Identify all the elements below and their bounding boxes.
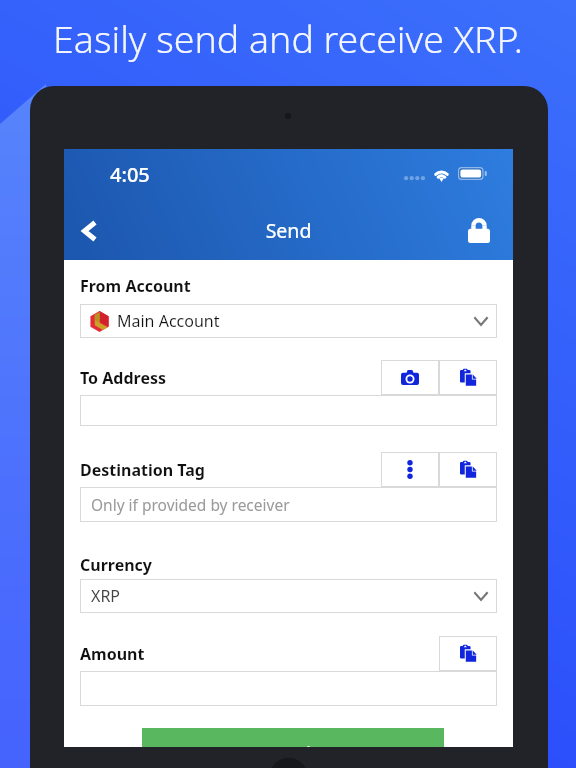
staticText: Amount <box>80 643 145 665</box>
button[interactable]: Paste <box>439 636 497 671</box>
button[interactable]: More options <box>381 452 439 487</box>
staticText: Currency <box>80 554 153 576</box>
staticText: 4:05 <box>110 161 150 188</box>
button[interactable]: Camera <box>381 360 439 395</box>
staticText: Send <box>275 741 311 747</box>
staticText: Only if provided by receiver <box>91 494 290 515</box>
staticText: To Address <box>80 367 167 389</box>
button[interactable]: Lock <box>457 208 501 252</box>
button[interactable]: Paste <box>439 452 497 487</box>
button[interactable]: Main Account <box>80 304 497 338</box>
button[interactable] <box>80 395 497 426</box>
staticText: Easily send and receive XRP. <box>0 13 576 64</box>
button[interactable]: XRP <box>80 579 497 613</box>
staticText: Send <box>64 217 513 244</box>
button[interactable] <box>80 671 497 706</box>
staticText: Destination Tag <box>80 459 205 481</box>
button[interactable]: Paste <box>439 360 497 395</box>
button[interactable]: Only if provided by receiver <box>80 487 497 522</box>
staticText: From Account <box>80 275 191 297</box>
staticText: XRP <box>91 585 121 607</box>
button[interactable]: Back <box>65 207 113 255</box>
staticText: Main Account <box>117 310 220 332</box>
